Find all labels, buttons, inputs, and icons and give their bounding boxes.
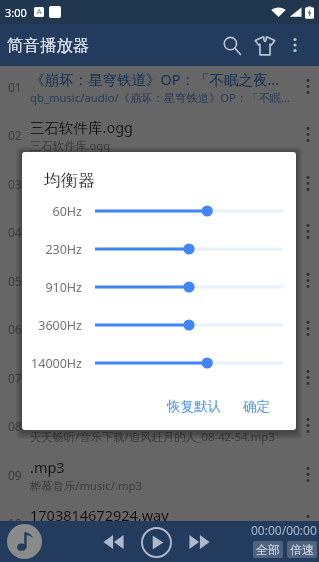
staticText: 确定 <box>243 398 270 415</box>
staticText: 音乐文件三.mp3 <box>30 166 138 186</box>
staticText: 三石软件库.ogg <box>30 117 133 137</box>
staticText: 08 <box>8 418 22 434</box>
staticText: 纯音乐片段.wav <box>30 311 134 331</box>
button[interactable]: 倍速 <box>287 541 317 558</box>
button[interactable]: 03 <box>0 159 319 208</box>
button[interactable]: Item menu <box>297 62 319 111</box>
button[interactable]: Item menu <box>297 401 319 450</box>
staticText: 追风赶月的人_08-42-54.mp3 <box>30 408 218 428</box>
button[interactable]: Item menu <box>297 304 319 353</box>
button[interactable]: 恢复默认 <box>159 390 229 423</box>
button[interactable]: 230Hz level <box>95 234 283 264</box>
button[interactable]: Item menu <box>297 353 319 402</box>
staticText: 全部 <box>256 542 280 557</box>
button[interactable]: 确定 <box>235 390 278 423</box>
button[interactable]: 09 <box>0 450 319 499</box>
button[interactable]: 05 <box>0 256 319 305</box>
button[interactable]: 全部 <box>253 541 283 558</box>
staticText: 01 <box>8 79 22 95</box>
button[interactable]: 10 <box>0 498 319 547</box>
button[interactable]: Now playing <box>7 524 42 559</box>
button[interactable]: Next <box>184 527 214 557</box>
button[interactable]: 02 <box>0 110 319 159</box>
staticText: 05 <box>8 273 22 289</box>
button[interactable]: 910Hz level <box>95 272 283 302</box>
staticText: 均衡器 <box>44 170 95 191</box>
staticText: qb_music/audio/《崩坏：星穹铁道》OP：「不眠… <box>30 90 291 105</box>
staticText: 07 <box>8 370 22 386</box>
button[interactable]: 04 <box>0 207 319 256</box>
staticText: 60Hz <box>52 203 82 220</box>
staticText: 桦慕音乐/music/.mp3 <box>30 478 142 493</box>
button[interactable]: Item menu <box>297 256 319 305</box>
button[interactable]: Item menu <box>297 110 319 159</box>
button[interactable]: 07 <box>0 353 319 402</box>
button[interactable]: More options <box>281 31 309 59</box>
button[interactable]: 60Hz level <box>95 196 283 226</box>
staticText: A <box>37 7 42 17</box>
button[interactable]: 3600Hz level <box>95 310 283 340</box>
staticText: 简音播放器 <box>7 35 90 56</box>
button[interactable]: Theme <box>248 29 281 62</box>
staticText: music/audio/音乐文件三.mp3 <box>30 187 184 202</box>
staticText: 三石软件库.ogg <box>30 138 111 153</box>
staticText: 《崩坏：星穹铁道》OP：「不眠之夜… <box>30 69 280 89</box>
button[interactable]: Play <box>139 525 173 559</box>
staticText: .mp3 <box>30 457 65 477</box>
button[interactable]: Search <box>215 29 248 62</box>
staticText: 恢复默认 <box>167 398 221 415</box>
staticText: 04 <box>8 224 22 240</box>
button[interactable]: 08 <box>0 401 319 450</box>
staticText: 倍速 <box>290 542 314 557</box>
staticText: 3:00 <box>5 5 27 20</box>
button[interactable]: Item menu <box>297 207 319 256</box>
staticText: 3600Hz <box>38 317 82 334</box>
button[interactable]: Previous <box>98 527 128 557</box>
staticText: 09 <box>8 467 22 483</box>
staticText: 1703814672924.wav <box>30 505 169 525</box>
staticText: 轻音乐合集.mp3 <box>30 214 138 234</box>
staticText: 录音_2024.m4a <box>30 360 133 380</box>
staticText: 10 <box>8 515 22 531</box>
staticText: music/audio/夜曲伴奏.mp3 <box>30 284 172 299</box>
staticText: 14000Hz <box>31 355 82 372</box>
button[interactable]: 06 <box>0 304 319 353</box>
staticText: 00:00/00:00 <box>251 522 317 538</box>
staticText: music/audio/轻音乐合集.mp3 <box>30 235 184 250</box>
staticText: 03 <box>8 176 22 192</box>
button[interactable]: Item menu <box>297 450 319 499</box>
button[interactable]: 14000Hz level <box>95 348 283 378</box>
button[interactable]: Item menu <box>297 159 319 208</box>
button[interactable]: Item menu <box>297 498 319 547</box>
staticText: 天天畅听/音乐下载/追风赶月的人_08-42-54.mp3 <box>30 429 275 444</box>
staticText: download/1703814672924.wav <box>30 526 195 541</box>
staticText: 230Hz <box>45 241 82 258</box>
staticText: 02 <box>8 127 22 143</box>
staticText: 910Hz <box>45 279 82 296</box>
button[interactable]: 01 <box>0 62 319 111</box>
staticText: 06 <box>8 321 22 337</box>
